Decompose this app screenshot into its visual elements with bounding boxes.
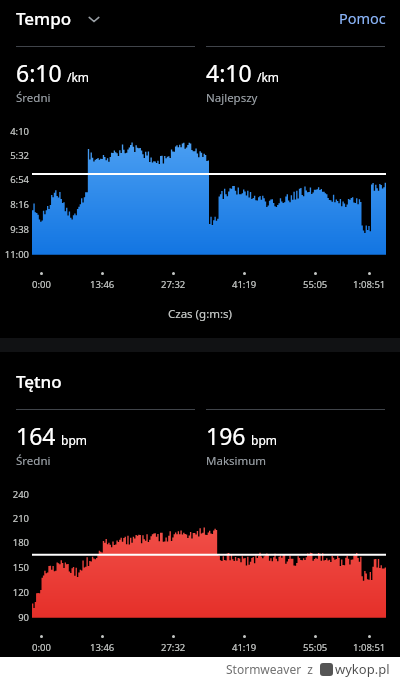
staticText: 41:19 — [232, 641, 257, 654]
button[interactable]: 6:10 — [16, 57, 195, 106]
staticText: 210 — [12, 512, 29, 525]
staticText: 150 — [12, 561, 29, 574]
staticText: Najlepszy — [206, 90, 258, 106]
staticText: /km — [67, 69, 90, 85]
staticText: 11:00 — [4, 248, 29, 261]
staticText: wykop.pl — [335, 660, 390, 678]
staticText: 180 — [12, 536, 29, 549]
button[interactable]: 164 — [16, 420, 195, 469]
button[interactable]: Tempo — [16, 7, 108, 30]
staticText: Tempo — [16, 7, 72, 30]
other: Expand — [86, 11, 102, 27]
staticText: 13:46 — [90, 641, 115, 654]
staticText: 27:32 — [161, 278, 186, 291]
button[interactable]: Tętno — [16, 370, 68, 393]
staticText: /km — [257, 69, 280, 85]
staticText: 55:05 — [303, 641, 328, 654]
staticText: 13:46 — [90, 278, 115, 291]
staticText: bpm — [251, 432, 277, 448]
staticText: bpm — [61, 432, 87, 448]
staticText: 6:54 — [10, 173, 29, 186]
staticText: 90 — [18, 611, 29, 624]
button[interactable]: 4:10 — [206, 57, 385, 106]
button[interactable]: Pomoc — [325, 4, 400, 32]
staticText: Tętno — [16, 370, 62, 393]
staticText: Średni — [16, 90, 51, 106]
staticText: 1:08:51 — [353, 278, 386, 291]
staticText: 9:38 — [10, 223, 29, 236]
staticText: 4:10 — [10, 125, 29, 138]
staticText: 55:05 — [303, 278, 328, 291]
staticText: 0:00 — [32, 641, 51, 654]
button[interactable]: 196 — [206, 420, 385, 469]
staticText: 240 — [12, 488, 29, 501]
staticText: Stormweaver z — [226, 661, 320, 677]
staticText: 0:00 — [32, 278, 51, 291]
staticText: Maksimum — [206, 453, 267, 469]
staticText: 6:10 — [16, 57, 62, 88]
staticText: 41:19 — [232, 278, 257, 291]
staticText: 120 — [12, 586, 29, 599]
staticText: Pomoc — [339, 8, 386, 28]
staticText: 164 — [16, 420, 56, 451]
staticText: 1:08:51 — [353, 641, 386, 654]
staticText: Czas (g:m:s) — [168, 306, 233, 322]
staticText: 4:10 — [206, 57, 252, 88]
staticText: 27:32 — [161, 641, 186, 654]
staticText: 196 — [206, 420, 246, 451]
staticText: 8:16 — [10, 198, 29, 211]
staticText: 5:32 — [10, 149, 29, 162]
staticText: Średni — [16, 453, 51, 469]
